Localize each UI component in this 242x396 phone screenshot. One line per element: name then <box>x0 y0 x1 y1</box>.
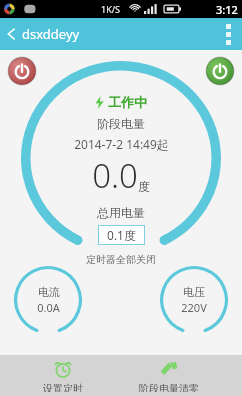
staticText: 总用电量 <box>97 205 145 220</box>
button[interactable]: More options <box>215 18 242 50</box>
button[interactable]: Back <box>0 18 90 50</box>
staticText: 0.0 <box>92 153 138 198</box>
staticText: 阶段电量 <box>97 116 145 131</box>
staticText: 电压 <box>183 285 205 299</box>
button[interactable]: Set timer <box>29 355 97 396</box>
staticText: 2014-7-2 14:49起 <box>74 136 169 152</box>
other: Clear stage power <box>159 359 179 379</box>
button[interactable]: Clear stage power <box>125 355 213 396</box>
staticText: 1K/S <box>101 3 121 15</box>
staticText: dsxddeyy <box>22 25 80 43</box>
staticText: 度 <box>138 179 150 194</box>
other: Back <box>7 27 16 41</box>
button[interactable]: 电流 <box>14 266 82 334</box>
staticText: 阶段电量清零 <box>139 382 199 392</box>
button[interactable]: Power on <box>205 56 235 86</box>
staticText: 220V <box>181 300 207 315</box>
staticText: 3:12 <box>216 2 238 17</box>
staticText: 0.0A <box>37 300 60 315</box>
button[interactable]: Power off <box>7 56 37 86</box>
staticText: 电流 <box>38 285 60 299</box>
other: Set timer <box>53 359 73 379</box>
staticText: 0.1度 <box>107 227 136 243</box>
staticText: 设置定时 <box>43 382 83 392</box>
staticText: 工作中 <box>108 94 147 110</box>
button[interactable]: 电压 <box>160 266 228 334</box>
staticText: 定时器全部关闭 <box>86 253 156 266</box>
button[interactable]: 0.1度 <box>98 225 145 245</box>
